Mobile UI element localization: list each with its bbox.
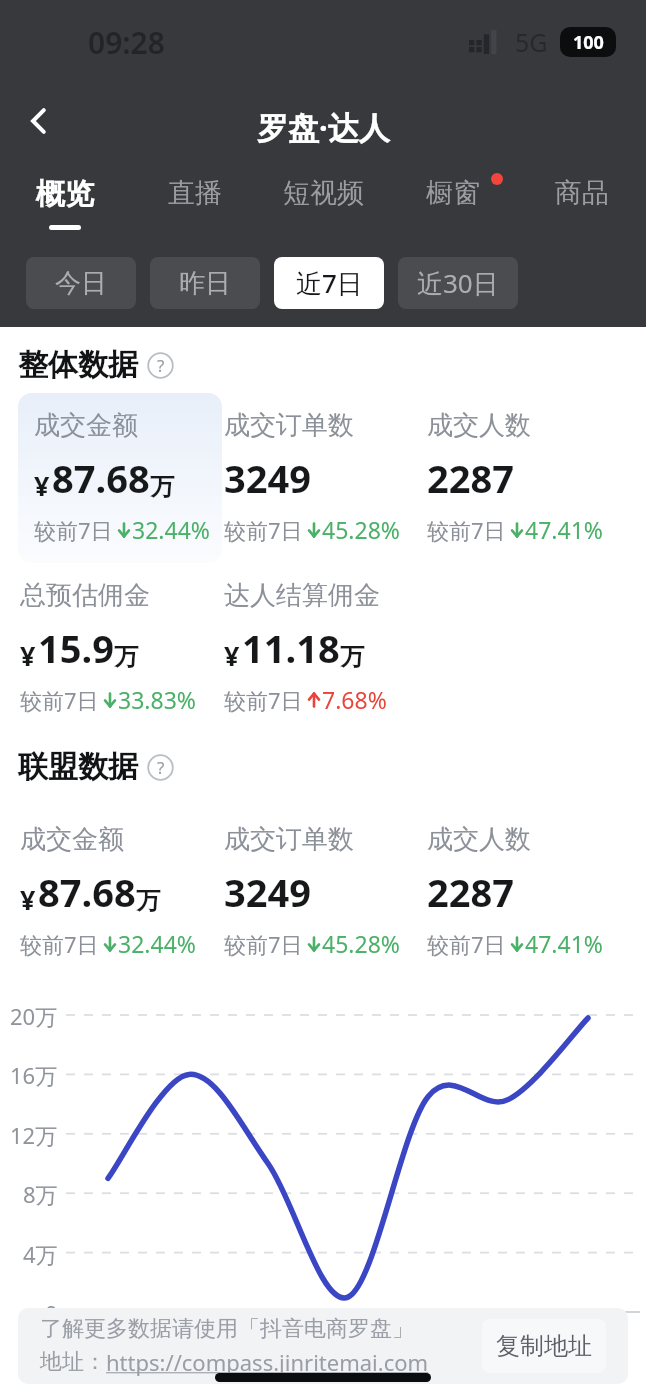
staticText: 16万 <box>10 1060 58 1090</box>
staticText: ? <box>157 756 165 779</box>
staticText: 11.18 <box>242 622 340 674</box>
button[interactable]: 联盟数据 <box>18 745 174 789</box>
staticText: 较前7日 <box>20 685 99 715</box>
staticText: 0 <box>45 1298 58 1328</box>
staticText: 87.68 <box>38 866 136 918</box>
staticText: 成交金额 <box>34 409 138 442</box>
button[interactable]: Back <box>8 90 70 152</box>
button[interactable]: 概览 <box>0 176 130 246</box>
button[interactable]: 成交订单数 <box>222 393 425 563</box>
staticText: 12万 <box>10 1120 58 1150</box>
staticText: https://compass.jinritemai.com <box>106 1347 429 1377</box>
staticText: 今日 <box>55 267 107 300</box>
staticText: 2287 <box>427 452 514 504</box>
staticText: 3249 <box>224 866 311 918</box>
button[interactable]: 成交人数 <box>425 807 628 977</box>
staticText: 5G <box>515 25 548 59</box>
button[interactable]: 短视频 <box>259 176 388 246</box>
staticText: 100 <box>573 30 604 55</box>
button[interactable]: 商品 <box>517 176 646 246</box>
staticText: 复制地址 <box>496 1331 592 1361</box>
staticText: 较前7日 <box>224 929 303 959</box>
staticText: 20万 <box>10 1001 58 1031</box>
staticText: 整体数据 <box>18 346 138 384</box>
staticText: 较前7日 <box>34 515 113 545</box>
staticText: 03/22 <box>479 1321 538 1351</box>
staticText: 较前7日 <box>427 929 506 959</box>
staticText: 万 <box>114 642 138 672</box>
staticText: 较前7日 <box>427 515 506 545</box>
staticText: 45.28% <box>322 928 400 959</box>
staticText: 较前7日 <box>224 515 303 545</box>
staticText: 45.28% <box>322 514 400 545</box>
staticText: 较前7日 <box>20 929 99 959</box>
staticText: 总预估佣金 <box>20 579 150 612</box>
staticText: 直播 <box>168 176 222 210</box>
staticText: 短视频 <box>283 176 364 210</box>
staticText: 87.68 <box>52 452 150 504</box>
staticText: 橱窗 <box>426 176 480 210</box>
staticText: ¥ <box>20 881 36 918</box>
staticText: 昨日 <box>179 267 231 300</box>
staticText: 47.41% <box>525 514 603 545</box>
staticText: 4万 <box>23 1239 58 1269</box>
staticText: 03/21 <box>399 1321 458 1351</box>
button[interactable]: 达人结算佣金 <box>222 563 425 733</box>
staticText: 03/20 <box>319 1321 378 1351</box>
button[interactable]: 近7日 <box>274 257 384 309</box>
staticText: 32.44% <box>118 928 196 959</box>
staticText: 7.68% <box>322 684 387 715</box>
staticText: 成交订单数 <box>224 823 354 856</box>
button[interactable]: 直播 <box>130 176 259 246</box>
staticText: 成交人数 <box>427 823 531 856</box>
staticText: 达人结算佣金 <box>224 579 380 612</box>
staticText: 近30日 <box>417 265 499 301</box>
button[interactable]: 今日 <box>26 257 136 309</box>
staticText: 03/17 <box>79 1321 138 1351</box>
staticText: ¥ <box>34 467 50 504</box>
staticText: ¥ <box>20 637 36 674</box>
staticText: 成交金额 <box>20 823 124 856</box>
button[interactable]: 橱窗 <box>388 176 517 246</box>
button[interactable]: 整体数据 <box>18 343 174 387</box>
button[interactable]: 总预估佣金 <box>18 563 222 733</box>
button[interactable]: 复制地址 <box>482 1319 606 1373</box>
staticText: 03/19 <box>239 1321 298 1351</box>
staticText: 近7日 <box>296 265 363 301</box>
staticText: 成交人数 <box>427 409 531 442</box>
staticText: 联盟数据 <box>18 748 138 786</box>
staticText: 3249 <box>224 452 311 504</box>
staticText: ? <box>157 354 165 377</box>
staticText: 地址： <box>40 1348 106 1376</box>
staticText: 03/18 <box>160 1321 219 1351</box>
staticText: 万 <box>136 886 160 916</box>
button[interactable]: 成交人数 <box>425 393 628 563</box>
staticText: 万 <box>340 642 364 672</box>
staticText: 47.41% <box>525 928 603 959</box>
staticText: 09:28 <box>88 22 165 63</box>
staticText: 8万 <box>23 1179 58 1209</box>
button[interactable]: 成交订单数 <box>222 807 425 977</box>
staticText: 了解更多数据请使用「抖音电商罗盘」 <box>40 1315 414 1343</box>
button[interactable]: 昨日 <box>150 257 260 309</box>
staticText: 成交订单数 <box>224 409 354 442</box>
staticText: 商品 <box>555 176 609 210</box>
staticText: 15.9 <box>38 622 114 674</box>
button[interactable]: 近30日 <box>398 257 518 309</box>
staticText: 万 <box>150 472 174 502</box>
staticText: 32.44% <box>132 514 210 545</box>
button[interactable]: 成交金额 <box>18 393 222 563</box>
staticText: 2287 <box>427 866 514 918</box>
staticText: 33.83% <box>118 684 196 715</box>
staticText: ¥ <box>224 637 240 674</box>
staticText: 概览 <box>36 176 94 213</box>
staticText: 较前7日 <box>224 685 303 715</box>
button[interactable]: 成交金额 <box>18 807 222 977</box>
staticText: 03/23 <box>559 1321 618 1351</box>
staticText: 罗盘·达人 <box>257 106 390 148</box>
